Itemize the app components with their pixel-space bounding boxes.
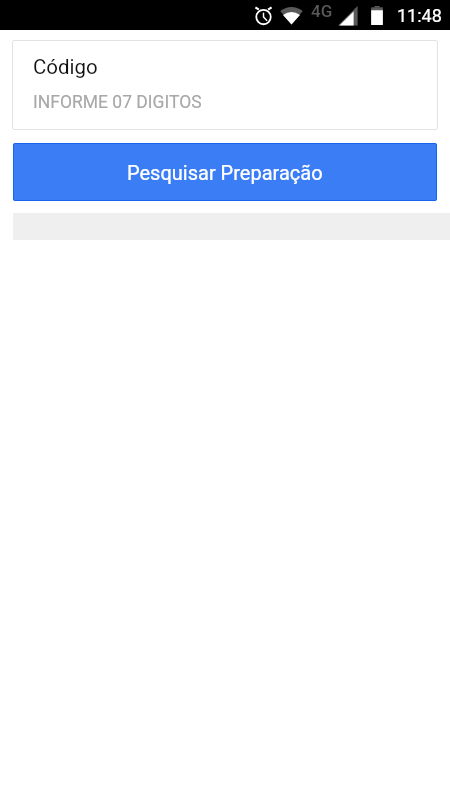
other: Wi-Fi bbox=[280, 5, 303, 25]
button[interactable]: Código bbox=[12, 40, 438, 130]
staticText: INFORME 07 DIGITOS bbox=[33, 92, 202, 113]
staticText: 11:48 bbox=[397, 5, 442, 26]
staticText: 4G bbox=[311, 1, 333, 21]
button[interactable]: Pesquisar Preparação bbox=[13, 143, 437, 201]
staticText: Código bbox=[33, 55, 98, 79]
other: Alarm set bbox=[254, 6, 273, 25]
other: Mobile signal bbox=[338, 6, 358, 26]
staticText: Pesquisar Preparação bbox=[127, 161, 323, 184]
other: Battery bbox=[370, 6, 384, 25]
